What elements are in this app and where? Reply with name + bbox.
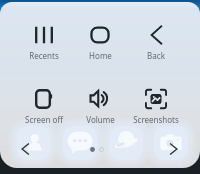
button[interactable]: Screenshots [128,88,184,125]
staticText: Recents [29,50,59,61]
button[interactable]: Recents [16,24,72,61]
staticText: Back [147,50,165,61]
button[interactable]: Screen off [16,88,72,125]
staticText: Screenshots [133,114,179,125]
button[interactable]: Back [128,24,184,61]
button[interactable]: Next page [163,138,185,160]
staticText: Home [89,50,112,61]
button[interactable]: Volume [72,88,128,125]
staticText: Volume [86,114,115,125]
staticText: Screen off [25,114,63,125]
button[interactable]: Home [72,24,128,61]
button[interactable]: Previous page [14,138,36,160]
